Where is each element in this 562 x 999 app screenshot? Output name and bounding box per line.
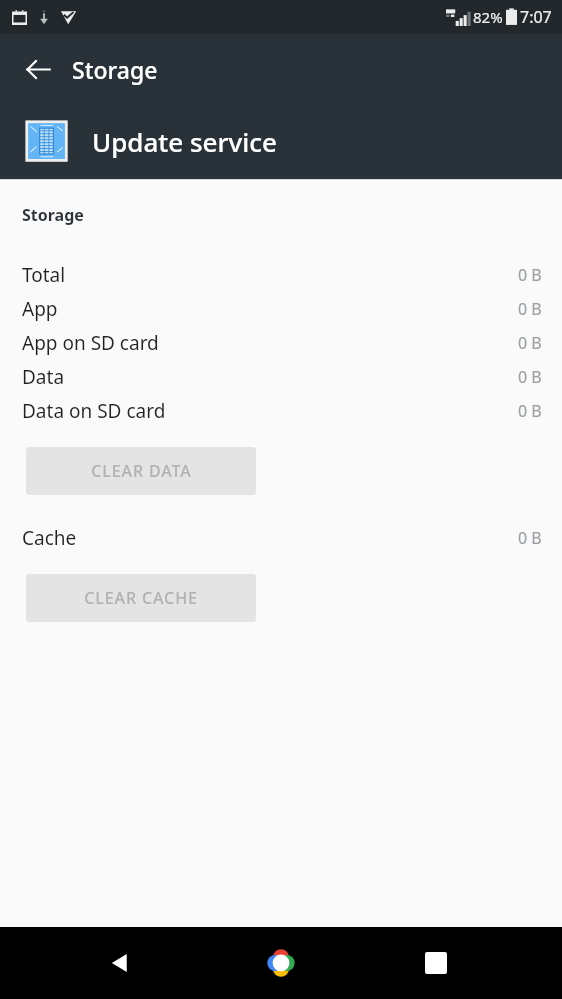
staticText: CLEAR CACHE [84,587,198,609]
staticText: 0 B [518,400,542,422]
button[interactable]: CLEAR DATA [26,447,256,495]
staticText: Storage [72,54,158,85]
staticText: Data on SD card [22,398,166,424]
staticText: 0 B [518,366,542,388]
staticText: App on SD card [22,330,159,356]
staticText: 0 B [518,264,542,286]
staticText: Total [22,262,66,288]
staticText: 0 B [518,527,542,549]
staticText: Update service [92,124,277,159]
staticText: 0 B [518,298,542,320]
staticText: Cache [22,525,77,551]
button[interactable]: Back [12,43,64,95]
staticText: 7:07 [520,6,552,28]
staticText: CLEAR DATA [91,460,192,482]
staticText: 82% [473,7,503,27]
staticText: App [22,296,58,322]
button[interactable]: CLEAR CACHE [26,574,256,622]
staticText: 0 B [518,332,542,354]
button[interactable]: Home [255,937,307,989]
button[interactable]: Back [94,937,146,989]
button[interactable]: Recent apps [410,937,462,989]
staticText: Storage [22,204,84,226]
staticText: Data [22,364,65,390]
